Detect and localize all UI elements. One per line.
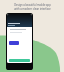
staticText: with a modern clean interface — [14, 7, 51, 11]
staticText: Design a beautiful mobile app — [14, 3, 51, 7]
